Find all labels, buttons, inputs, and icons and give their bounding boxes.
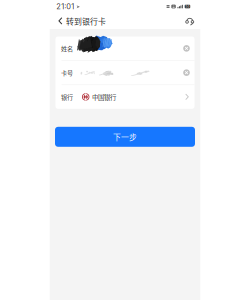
staticText: 姓名	[61, 44, 73, 53]
button[interactable]: Customer service	[184, 15, 195, 27]
button[interactable]: Clear	[181, 41, 192, 55]
button[interactable]: 转到银行卡	[50, 13, 110, 29]
button[interactable]: 下一步	[55, 127, 195, 147]
button[interactable]: Clear	[181, 66, 192, 80]
button[interactable]: 银行	[55, 85, 194, 109]
staticText: 卡号	[61, 68, 73, 77]
staticText: 下一步	[113, 131, 137, 142]
staticText: 53	[185, 5, 189, 8]
staticText: 中国银行	[92, 92, 116, 102]
staticText: 银行	[61, 92, 73, 101]
staticText: 21:01	[56, 2, 74, 11]
staticText: 转到银行卡	[66, 15, 106, 27]
